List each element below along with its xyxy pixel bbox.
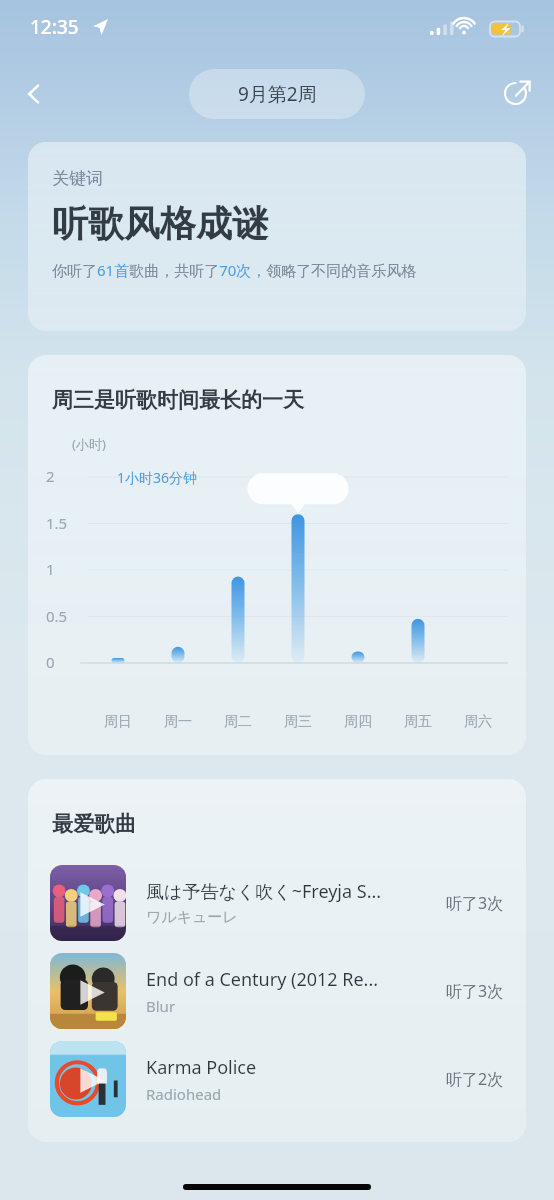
staticText: 你听了61首歌曲，共听了70次，领略了不同的音乐风格 [52, 260, 417, 280]
staticText: 1小时36分钟 [117, 468, 198, 487]
staticText: 周日 [104, 713, 132, 731]
staticText: 1.5 [46, 513, 68, 533]
staticText: 周四 [344, 713, 372, 731]
button[interactable]: Back [12, 72, 56, 116]
staticText: 周三是听歌时间最长的一天 [52, 387, 304, 413]
staticText: 2 [46, 466, 55, 486]
staticText: 0.5 [46, 606, 68, 626]
staticText: Blur [146, 996, 176, 1016]
staticText: (小时) [72, 435, 106, 453]
staticText: End of a Century (2012 Re... [146, 967, 379, 992]
staticText: 最爱歌曲 [52, 811, 136, 837]
staticText: 9月第2周 [238, 81, 317, 107]
staticText: 周六 [464, 713, 492, 731]
staticText: 周五 [404, 713, 432, 731]
staticText: 周二 [224, 713, 252, 731]
button[interactable]: 9月第2周 [189, 69, 365, 119]
button[interactable]: Karma Police [50, 1035, 504, 1123]
staticText: Radiohead [146, 1084, 222, 1104]
staticText: 关键词 [52, 168, 103, 189]
staticText: 12:35 [30, 14, 79, 40]
staticText: 0 [46, 652, 55, 672]
staticText: 听歌风格成谜 [52, 201, 268, 246]
button[interactable]: 風は予告なく吹く~Freyja S... [50, 859, 504, 947]
staticText: 听了3次 [446, 980, 504, 1002]
button[interactable]: Share [494, 71, 540, 117]
staticText: 周一 [164, 713, 192, 731]
staticText: 1 [46, 559, 55, 579]
staticText: 听了2次 [446, 1068, 504, 1090]
staticText: 周三 [284, 713, 312, 731]
staticText: 听了3次 [446, 892, 504, 914]
staticText: ワルキューレ [146, 908, 238, 927]
button[interactable]: End of a Century (2012 Re... [50, 947, 504, 1035]
staticText: Karma Police [146, 1055, 257, 1080]
staticText: 風は予告なく吹く~Freyja S... [146, 879, 382, 904]
